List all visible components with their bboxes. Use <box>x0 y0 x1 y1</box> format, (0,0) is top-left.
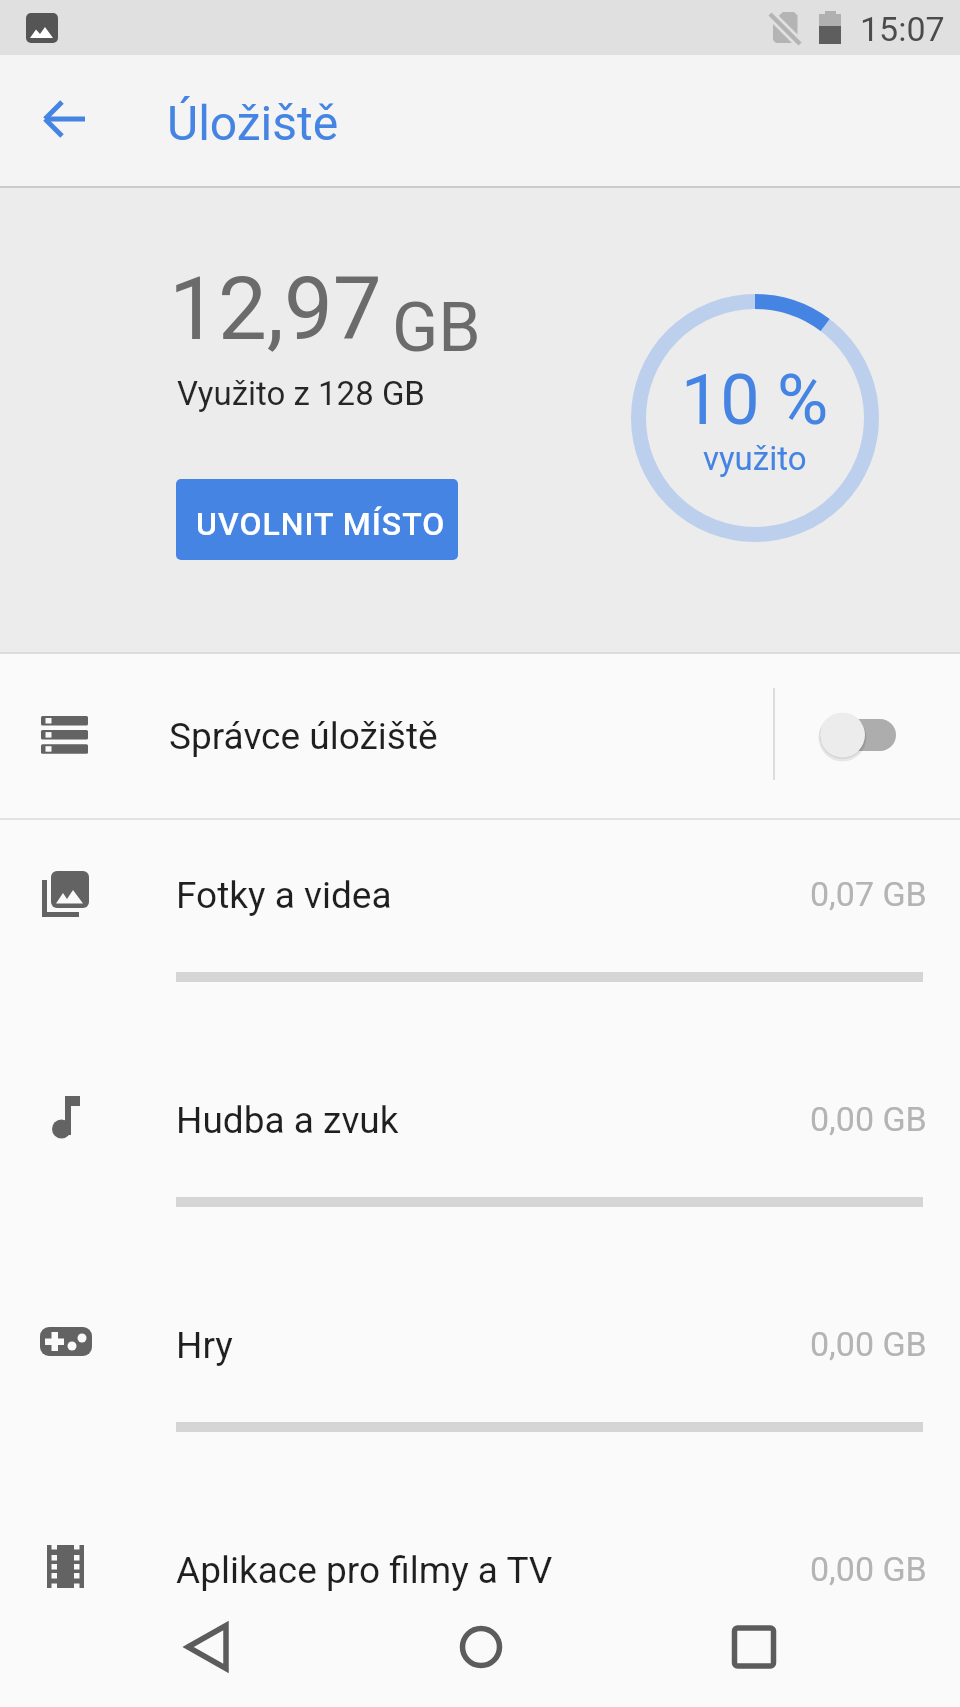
staticText: 0,00 GB <box>810 1099 927 1139</box>
button[interactable]: Back <box>22 75 110 163</box>
button[interactable]: Storage manager toggle <box>805 700 911 770</box>
staticText: využito <box>703 439 807 478</box>
staticText: Aplikace pro filmy a TV <box>176 1549 553 1592</box>
staticText: 0,07 GB <box>810 874 927 914</box>
staticText: 0,00 GB <box>810 1549 927 1589</box>
staticText: 12,97 <box>169 258 382 360</box>
staticText: Fotky a videa <box>176 874 392 917</box>
button[interactable] <box>0 1049 960 1274</box>
staticText: Úložiště <box>167 95 339 151</box>
button[interactable]: Home <box>433 1599 529 1695</box>
staticText: Hudba a zvuk <box>176 1099 399 1142</box>
button[interactable] <box>0 824 960 1049</box>
button[interactable] <box>0 652 960 818</box>
staticText: Hry <box>176 1324 233 1367</box>
staticText: 10 % <box>681 359 829 441</box>
staticText: 0,00 GB <box>810 1324 927 1364</box>
staticText: GB <box>392 288 481 368</box>
button[interactable] <box>0 1274 960 1499</box>
button[interactable] <box>0 1499 960 1609</box>
staticText: UVOLNIT MÍSTO <box>196 505 446 543</box>
button[interactable]: Back <box>159 1599 255 1695</box>
staticText: Využito z 128 GB <box>177 374 425 413</box>
staticText: Správce úložiště <box>169 715 438 758</box>
staticText: 15:07 <box>860 9 945 49</box>
button[interactable]: UVOLNIT MÍSTO <box>176 479 458 560</box>
button[interactable]: Recent apps <box>706 1599 802 1695</box>
